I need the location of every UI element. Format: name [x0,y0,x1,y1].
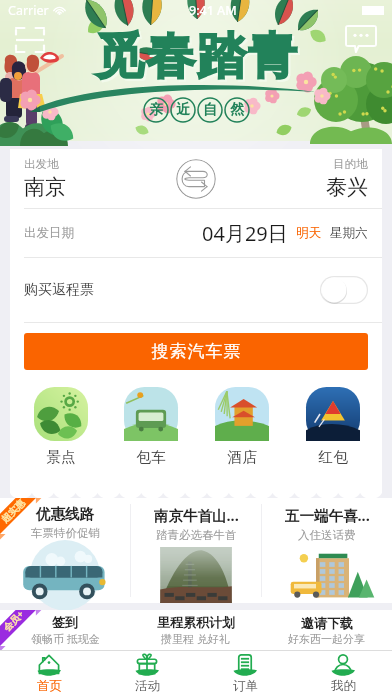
staticText: 里程累积计划 [157,614,235,630]
staticText: 包车 [136,448,166,466]
button[interactable]: 优惠线路 [0,498,130,603]
staticText: 星期六 [330,225,368,241]
staticText: 攒里程 兑好礼 [161,631,230,646]
staticText: 搜索汽车票 [151,341,241,362]
staticText: 泰兴 [326,174,368,200]
button[interactable]: Swap departure and destination [176,159,216,199]
staticText: 红包 [318,448,348,466]
staticText: 优惠线路 [36,505,94,523]
button[interactable]: 五一端午喜... [262,498,392,603]
staticText: 首页 [37,678,62,694]
button[interactable]: 活动 [98,651,196,696]
staticText: 超实惠 [0,496,28,525]
staticText: 领畅币 抵现金 [31,631,100,646]
button[interactable]: 目的地 [216,157,368,200]
staticText: 南京牛首山... [154,505,239,525]
staticText: 明天 [296,225,321,241]
button[interactable]: 景点 [16,387,106,466]
button[interactable]: Buy return ticket toggle [320,276,368,304]
staticText: 觅春踏青 [96,28,300,90]
staticText: 04月29日 [202,220,288,247]
button[interactable]: 南京牛首山... [131,498,261,603]
staticText: 出发日期 [24,225,74,241]
button[interactable]: 签到 [0,610,130,650]
button[interactable]: Messages [346,26,376,52]
button[interactable]: 首页 [0,651,98,696]
staticText: 出发地 [24,157,59,171]
staticText: 目的地 [333,157,368,171]
button[interactable]: 搜索汽车票 [24,333,368,370]
button[interactable]: 酒店 [196,387,287,466]
staticText: 景点 [46,448,76,466]
button[interactable]: Scan [16,26,44,54]
button[interactable]: 出发日期 [24,209,368,257]
staticText: 邀请下载 [301,615,353,631]
staticText: 近 [176,101,190,119]
button[interactable]: 红包 [287,387,378,466]
staticText: 入住送话费 [298,528,356,542]
staticText: 南京 [24,174,66,200]
staticText: 车票特价促销 [31,526,100,540]
staticText: 签到 [52,614,78,630]
button[interactable]: 购买返程票 [24,258,368,322]
button[interactable]: 订单 [196,651,294,696]
staticText: 购买返程票 [24,281,94,299]
staticText: 酒店 [227,448,257,466]
staticText: 觅春踏青 [94,26,298,88]
button[interactable]: 我的 [294,651,392,696]
button[interactable]: 里程累积计划 [130,610,261,650]
button[interactable]: 包车 [106,387,196,466]
staticText: 亲 [149,101,163,119]
button[interactable]: 出发地 [24,157,176,200]
staticText: 订单 [233,678,258,694]
button[interactable]: 邀请下载 [261,610,392,650]
staticText: 9:41 AM [189,2,237,19]
staticText: 活动 [135,678,160,694]
staticText: 然 [230,101,244,119]
staticText: 踏青必选春牛首 [156,528,237,542]
staticText: 好东西一起分享 [288,632,365,646]
staticText: Carrier [8,2,49,19]
staticText: 我的 [331,678,356,694]
staticText: 五一端午喜... [285,505,370,525]
staticText: 自 [203,101,217,119]
staticText: 会员+ [0,607,27,634]
